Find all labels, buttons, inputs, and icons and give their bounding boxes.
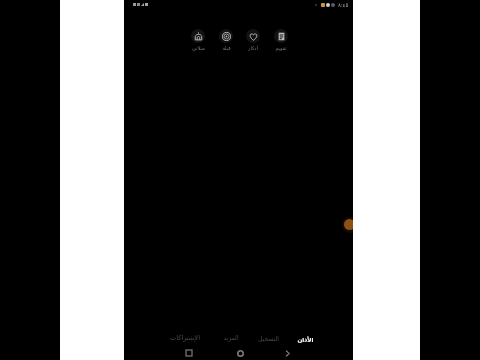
button[interactable]: أذكار	[239, 29, 267, 51]
button[interactable]: المزيد	[213, 330, 249, 344]
button[interactable]: قبلة	[212, 29, 240, 51]
button[interactable]: Add	[344, 219, 355, 230]
staticText: التسجيل	[258, 335, 279, 342]
button[interactable]: الأذان	[287, 333, 323, 347]
button[interactable]: التسجيل	[250, 331, 286, 345]
button[interactable]: Back	[280, 346, 294, 360]
staticText: الأذان	[297, 337, 314, 344]
staticText: تقويم	[275, 45, 287, 51]
staticText: الإشتراكات	[170, 334, 200, 342]
button[interactable]: Recents	[182, 346, 196, 360]
button[interactable]: تقويم	[267, 29, 295, 51]
button[interactable]: صلاتي	[184, 29, 212, 51]
button[interactable]: الإشتراكات	[167, 331, 203, 345]
staticText: ٨:٤٥	[338, 1, 349, 8]
staticText: المزيد	[223, 334, 239, 341]
staticText: أذكار	[248, 45, 258, 51]
staticText: قبلة	[222, 45, 231, 51]
staticText: صلاتي	[192, 45, 205, 51]
button[interactable]: Home	[233, 346, 247, 360]
